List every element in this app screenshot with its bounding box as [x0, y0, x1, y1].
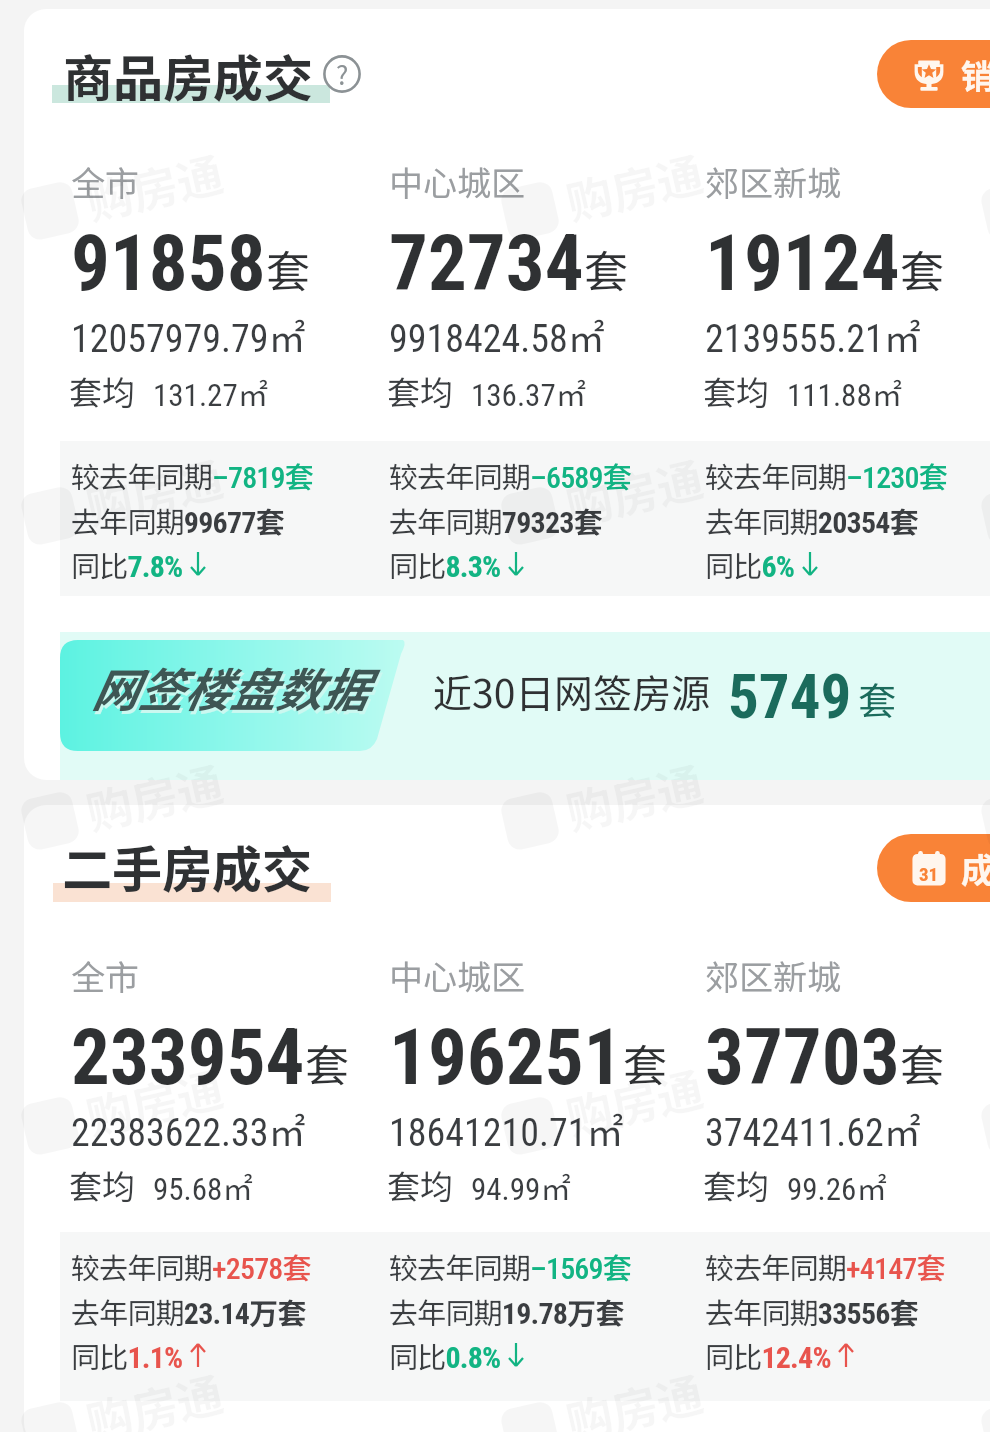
staticText: 套 — [858, 671, 897, 726]
staticText: 购房通 — [79, 1053, 229, 1149]
staticText: 111.88㎡ — [787, 371, 902, 414]
staticText: 套 — [623, 1031, 667, 1095]
staticText: 9918424.58㎡ — [389, 309, 605, 363]
staticText: 3742411.62㎡ — [705, 1103, 921, 1157]
staticText: 套均 — [703, 367, 769, 415]
staticText: 较去年同期+4147套 — [705, 1245, 945, 1287]
staticText: 全市 — [71, 157, 139, 206]
staticText: 较去年同期–6589套 — [389, 454, 631, 496]
staticText: 较去年同期–1569套 — [389, 1245, 631, 1287]
staticText: 136.37㎡ — [471, 371, 586, 414]
staticText: 套均 — [69, 1161, 135, 1209]
staticText: 套 — [900, 237, 944, 301]
staticText: 37703 — [705, 1013, 900, 1103]
staticText: 购房通 — [559, 1053, 709, 1149]
staticText: 网签楼盘数据 — [93, 657, 369, 724]
staticText: 18641210.71㎡ — [389, 1103, 624, 1157]
staticText: 购房通 — [559, 138, 709, 234]
staticText: 同比7.8% — [71, 543, 183, 585]
staticText: 同比8.3% — [389, 543, 501, 585]
staticText: 购房通 — [79, 443, 229, 539]
staticText: 购房通 — [559, 443, 709, 539]
staticText: 196251 — [389, 1013, 623, 1103]
staticText: 套均 — [387, 1161, 453, 1209]
staticText: 95.68㎡ — [153, 1165, 253, 1208]
staticText: 套 — [900, 1031, 944, 1095]
staticText: 购房通 — [79, 1358, 229, 1432]
staticText: 套 — [266, 237, 310, 301]
staticText: 233954 — [71, 1013, 305, 1103]
staticText: 同比0.8% — [389, 1334, 501, 1376]
staticText: 12057979.79㎡ — [71, 309, 306, 363]
staticText: 成交榜 — [961, 844, 990, 893]
staticText: 同比12.4% — [705, 1334, 831, 1376]
staticText: 购房通 — [79, 748, 229, 844]
staticText: 较去年同期+2578套 — [71, 1245, 311, 1287]
staticText: 套 — [584, 237, 628, 301]
staticText: 购房通 — [79, 138, 229, 234]
staticText: 郊区新城 — [705, 157, 841, 206]
staticText: 去年同期99677套 — [71, 499, 284, 541]
staticText: 近30日网签房源 — [433, 663, 711, 719]
button[interactable]: 成交榜 — [877, 834, 990, 902]
staticText: 91858 — [71, 219, 266, 309]
staticText: 99.26㎡ — [787, 1165, 887, 1208]
staticText: 网签楼盘数据 — [91, 654, 367, 721]
staticText: 购房通 — [559, 748, 709, 844]
staticText: 二手房成交 — [62, 830, 312, 902]
staticText: 中心城区 — [389, 157, 525, 206]
staticText: 商品房成交 — [63, 39, 313, 111]
staticText: 2139555.21㎡ — [705, 309, 921, 363]
staticText: 131.27㎡ — [153, 371, 268, 414]
staticText: 同比1.1% — [71, 1334, 183, 1376]
staticText: 郊区新城 — [705, 951, 841, 1000]
staticText: 31 — [919, 863, 939, 885]
staticText: 19124 — [705, 219, 900, 309]
staticText: 去年同期23.14万套 — [71, 1290, 306, 1332]
staticText: 较去年同期–7819套 — [71, 454, 313, 496]
staticText: 全市 — [71, 951, 139, 1000]
staticText: 22383622.33㎡ — [71, 1103, 306, 1157]
staticText: 套均 — [387, 367, 453, 415]
button[interactable]: 网签楼盘数据 — [60, 632, 990, 780]
button[interactable]: 说明 — [323, 55, 361, 93]
staticText: 72734 — [389, 219, 584, 309]
staticText: 购房通 — [559, 1358, 709, 1432]
staticText: 去年同期79323套 — [389, 499, 602, 541]
staticText: 较去年同期–1230套 — [705, 454, 947, 496]
staticText: 去年同期19.78万套 — [389, 1290, 624, 1332]
staticText: 套 — [305, 1031, 349, 1095]
button[interactable]: 销冠榜 — [877, 40, 990, 108]
staticText: 5749 — [728, 661, 852, 732]
staticText: 套均 — [703, 1161, 769, 1209]
staticText: 去年同期33556套 — [705, 1290, 918, 1332]
staticText: 同比6% — [705, 543, 795, 585]
staticText: 94.99㎡ — [471, 1165, 571, 1208]
staticText: 去年同期20354套 — [705, 499, 918, 541]
staticText: 套均 — [69, 367, 135, 415]
staticText: ? — [336, 55, 349, 93]
staticText: 销冠榜 — [961, 50, 990, 99]
staticText: 中心城区 — [389, 951, 525, 1000]
